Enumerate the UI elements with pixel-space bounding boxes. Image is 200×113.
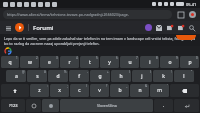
staticText: n [138,87,142,94]
staticText: ' [167,84,168,88]
button[interactable]: c [70,84,89,97]
staticText: # [44,70,46,74]
staticText: c [78,87,81,94]
button[interactable]: q [1,56,19,68]
staticText: o [168,59,172,66]
button[interactable]: Enter [174,99,199,112]
staticText: https://www.alter.si/tema/tehnicne-tezav… [7,12,129,17]
staticText: y [108,59,111,66]
staticText: ?123 [9,103,18,108]
staticText: _ [126,84,128,88]
button[interactable]: b [110,84,129,97]
staticText: ( [129,70,130,74]
staticText: ; [67,84,68,88]
staticText: e [48,59,51,66]
staticText: & [145,84,148,88]
button[interactable]: n [130,84,149,97]
button[interactable]: . [154,99,173,112]
staticText: " [191,70,193,74]
staticText: : [47,84,48,88]
button[interactable]: r [60,56,79,68]
button[interactable]: p [180,56,199,68]
staticText: v [98,87,101,94]
button[interactable]: s [27,70,47,82]
staticText: w [28,59,32,66]
button[interactable]: Menu [4,24,12,32]
button[interactable]: t [80,56,99,68]
button[interactable]: d [48,70,68,82]
staticText: p [188,59,192,66]
staticText: 05.41 [186,2,197,7]
staticText: Lepo da se ti smilim, sem pa zdele zakuh… [4,36,196,46]
button[interactable]: Search [188,24,196,32]
staticText: . [163,102,165,109]
button[interactable]: a [6,70,26,82]
staticText: t [89,59,91,66]
button[interactable]: Conversations [177,24,185,32]
staticText: l [183,73,185,80]
button[interactable]: e [40,56,59,68]
staticText: r [68,59,71,66]
staticText: 2 [36,56,38,60]
staticText: 0 [196,56,198,60]
button[interactable]: j [132,70,152,82]
button[interactable]: Account [145,24,152,31]
button[interactable]: Inbox [155,24,163,32]
button[interactable]: m [150,84,169,97]
staticText: - [87,70,88,74]
staticText: 4 [76,56,78,60]
button[interactable]: h [111,70,131,82]
staticText: g [98,73,102,80]
button[interactable]: k [153,70,173,82]
button[interactable]: https://www.alter.si/tema/tehnicne-tezav… [3,10,172,19]
button[interactable]: v [90,84,109,97]
staticText: 9 [176,56,178,60]
button[interactable]: y [100,56,119,68]
staticText: 5 [96,56,98,60]
staticText: ? [106,84,108,88]
button[interactable]: Logo [15,23,24,32]
staticText: u [128,59,132,66]
button[interactable]: ?123 [1,99,25,112]
staticText: h [119,73,123,80]
staticText: 3 [56,56,58,60]
button[interactable]: Menu [188,10,197,19]
staticText: % [64,70,67,74]
button[interactable]: w [20,56,39,68]
button[interactable]: u [120,56,139,68]
button[interactable]: Forumi [33,24,54,32]
button[interactable]: g [90,70,110,82]
staticText: z [38,87,41,94]
staticText: k [162,73,165,80]
staticText: b [118,87,122,94]
staticText: d [56,73,60,80]
button[interactable]: o [160,56,179,68]
staticText: ! [171,70,172,74]
staticText: j [141,73,143,80]
staticText: f [78,73,80,80]
button[interactable]: Alerts [166,24,174,32]
button[interactable]: x [50,84,69,97]
staticText: @ [22,70,25,74]
staticText: s [36,73,39,80]
staticText: 7 [136,56,138,60]
staticText: / [86,84,88,88]
button[interactable]: Slovenščina [60,99,153,112]
staticText: x [58,87,61,94]
button[interactable]: l [174,70,194,82]
button[interactable]: Google [4,47,11,54]
button[interactable]: i [140,56,159,68]
staticText: q [8,59,12,66]
button[interactable]: Tabs [176,10,185,19]
staticText: 8 [156,56,158,60]
button[interactable]: Backspace [170,84,199,97]
button[interactable]: Voice input [42,99,59,112]
staticText: m [157,87,162,94]
button[interactable]: Emoji [26,99,41,112]
button[interactable]: f [69,70,89,82]
staticText: ) [150,70,151,74]
button[interactable]: z [30,84,49,97]
staticText: 1 [16,56,18,60]
staticText: Slovenščina [97,103,117,108]
button[interactable]: Shift [1,84,29,97]
